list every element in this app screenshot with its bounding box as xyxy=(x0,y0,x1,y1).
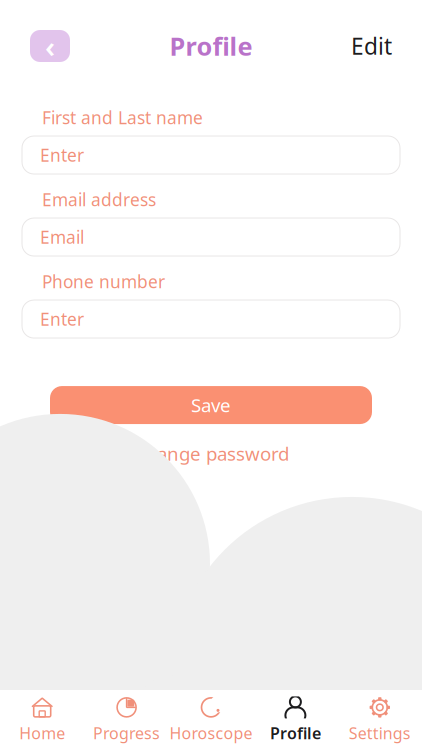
staticText: Profile xyxy=(169,29,252,63)
button[interactable]: Progress xyxy=(84,690,169,750)
staticText: Horoscope xyxy=(169,722,252,744)
staticText: Home xyxy=(19,722,65,744)
staticText: Phone number xyxy=(42,270,165,293)
staticText: Enter xyxy=(40,143,84,166)
staticText: Progress xyxy=(93,722,160,744)
button[interactable]: Save xyxy=(50,386,372,424)
button[interactable]: Change password xyxy=(133,441,289,466)
staticText: Email address xyxy=(42,188,156,211)
button[interactable]: Email xyxy=(22,218,400,256)
staticText: First and Last name xyxy=(42,106,203,129)
staticText: Save xyxy=(191,393,231,417)
staticText: Email xyxy=(40,225,84,248)
staticText: Edit xyxy=(351,31,392,61)
button[interactable]: Edit xyxy=(351,31,392,61)
button[interactable]: Back xyxy=(30,30,70,62)
button[interactable]: Profile xyxy=(253,690,338,750)
staticText: ‹ xyxy=(45,26,55,65)
button[interactable]: Horoscope xyxy=(169,690,253,750)
staticText: Enter xyxy=(40,307,84,330)
staticText: Profile xyxy=(270,722,321,744)
button[interactable]: Enter xyxy=(22,136,400,174)
staticText: Change password xyxy=(133,441,289,466)
button[interactable]: Settings xyxy=(338,690,422,750)
staticText: Settings xyxy=(349,722,411,744)
button[interactable]: Home xyxy=(0,690,84,750)
button[interactable]: Enter xyxy=(22,300,400,338)
